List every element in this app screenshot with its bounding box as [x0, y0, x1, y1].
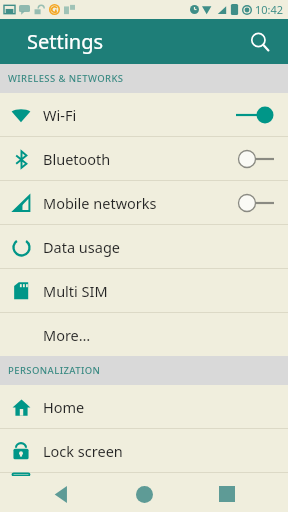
button[interactable]: Data usage — [0, 225, 288, 268]
staticText: 10:42 — [255, 2, 284, 17]
staticText: Wi-Fi — [43, 105, 77, 125]
staticText: PERSONALIZATION — [8, 364, 101, 377]
button[interactable]: Home — [122, 476, 166, 512]
staticText: More… — [43, 325, 91, 345]
button[interactable]: Multi SIM — [0, 269, 288, 312]
button[interactable]: Search — [240, 22, 280, 62]
button[interactable]: Recent apps — [205, 476, 249, 512]
staticText: Lock screen — [43, 441, 123, 461]
button[interactable]: Lock screen — [0, 429, 288, 472]
button[interactable]: Back — [39, 476, 83, 512]
staticText: Mobile networks — [43, 193, 157, 213]
staticText: Settings — [27, 28, 104, 55]
button[interactable]: Wi-Fi — [0, 93, 288, 136]
button[interactable]: Bluetooth — [0, 137, 288, 180]
staticText: Multi SIM — [43, 281, 108, 301]
button[interactable]: More… — [0, 313, 288, 356]
button[interactable]: Home — [0, 385, 288, 428]
staticText: Home — [43, 397, 85, 417]
button[interactable]: Themes — [0, 473, 288, 476]
staticText: Bluetooth — [43, 149, 111, 169]
staticText: Data usage — [43, 237, 120, 257]
staticText: WIRELESS & NETWORKS — [8, 72, 124, 85]
button[interactable]: Mobile networks — [0, 181, 288, 224]
